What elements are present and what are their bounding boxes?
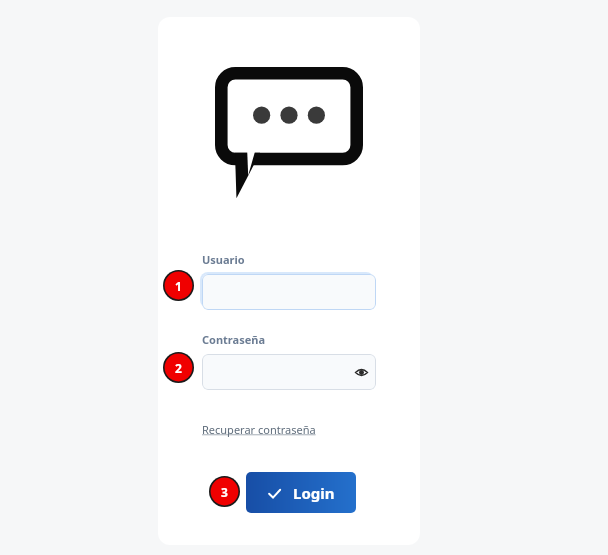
button[interactable] [202, 274, 376, 310]
button[interactable]: Login [246, 472, 356, 513]
staticText: 1 [175, 278, 182, 294]
button[interactable]: Mostrar contraseña [202, 354, 376, 390]
staticText: Recuperar contraseña [202, 422, 316, 437]
staticText: Usuario [202, 252, 245, 267]
button[interactable]: Recuperar contraseña [202, 422, 316, 437]
button[interactable]: Mostrar contraseña [352, 363, 370, 381]
staticText: Login [293, 483, 335, 503]
staticText: 2 [175, 360, 182, 376]
staticText: Contraseña [202, 332, 265, 347]
staticText: 3 [221, 484, 228, 500]
